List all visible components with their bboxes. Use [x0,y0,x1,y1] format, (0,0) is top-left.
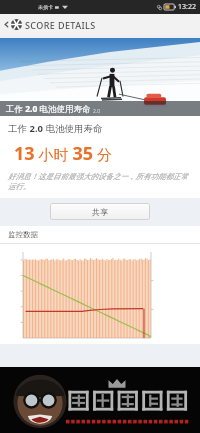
staticText: 工作 2.0 电池使用寿命 [6,103,91,115]
staticText: 工作 2.0 电池使用寿命 [8,122,103,135]
button[interactable]: 共享 [50,203,150,220]
button[interactable]: Back [0,14,102,35]
staticText: 2.0 [93,108,101,115]
staticText: 13 小时 35 分 [14,141,112,166]
staticText: 好消息！这是目前最强大的设备之一，所有功能都正常运行。 [8,172,192,192]
staticText: 13:22 [178,2,196,12]
other: Back [3,21,10,28]
staticText: SCORE DETAILS [25,19,96,31]
staticText: 共享 [92,207,108,217]
staticText: 监控数据 [8,230,38,239]
staticText: 未插卡 [38,4,53,10]
